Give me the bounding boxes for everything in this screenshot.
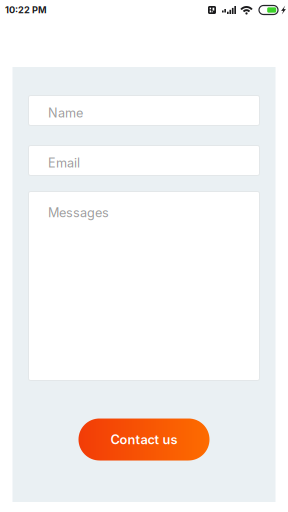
button[interactable]: Contact us [78, 418, 209, 460]
button[interactable]: Name [28, 95, 259, 125]
button[interactable]: Messages [28, 191, 259, 380]
staticText: Email [48, 155, 80, 171]
staticText: Name [48, 105, 83, 121]
staticText: 10:22 PM [5, 4, 47, 15]
staticText: Contact us [110, 432, 177, 447]
staticText: Messages [48, 205, 109, 220]
button[interactable]: Email [28, 145, 259, 175]
